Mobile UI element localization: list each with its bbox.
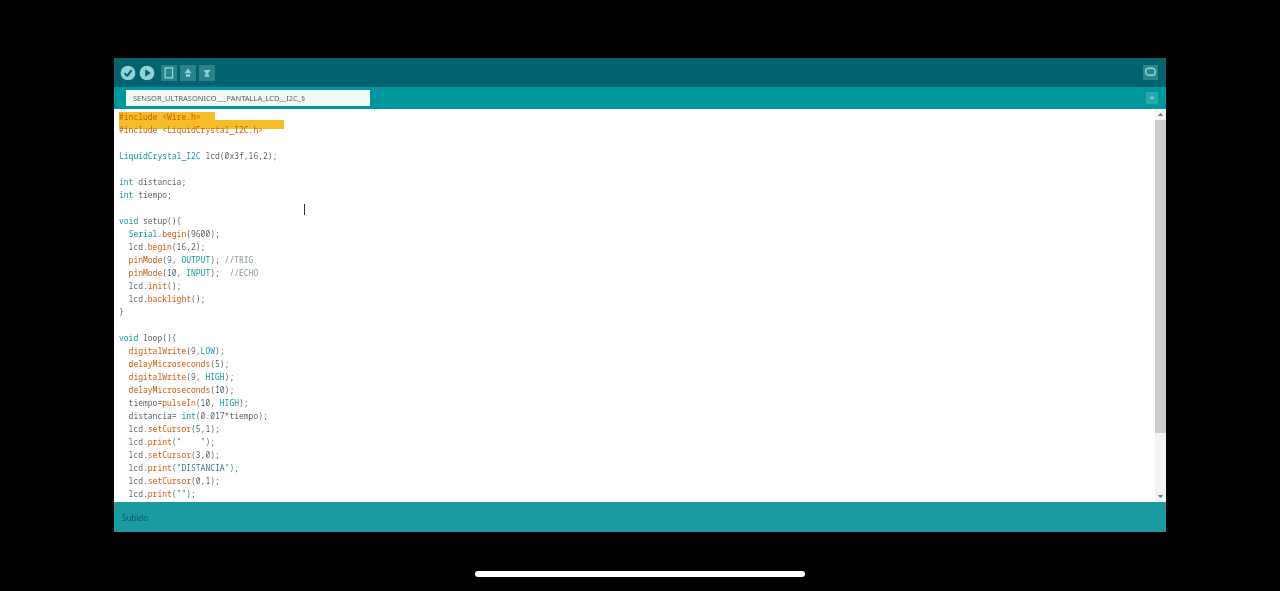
staticText: Serial.begin(9600); bbox=[119, 228, 220, 239]
staticText: lcd.print(""); bbox=[119, 488, 196, 499]
staticText: lcd.init(); bbox=[119, 280, 182, 291]
staticText: #include <Wire.h> bbox=[119, 111, 201, 122]
staticText: lcd.begin(16,2); bbox=[119, 241, 206, 252]
staticText: digitalWrite(9,LOW); bbox=[119, 345, 225, 356]
staticText: delayMicroseconds(10); bbox=[119, 384, 235, 395]
staticText: lcd.print(" "); bbox=[119, 436, 215, 447]
staticText: pinMode(10, INPUT); //ECHO bbox=[119, 267, 259, 278]
staticText: lcd.print("DISTANCIA"); bbox=[119, 462, 239, 473]
staticText: int distancia; bbox=[119, 176, 187, 187]
staticText: lcd.backlight(); bbox=[119, 293, 206, 304]
button[interactable]: New bbox=[161, 65, 177, 81]
staticText: lcd.setCursor(0,1); bbox=[119, 475, 220, 486]
staticText: digitalWrite(9, HIGH); bbox=[119, 371, 235, 382]
staticText: void loop(){ bbox=[119, 332, 177, 343]
button[interactable]: Upload bbox=[139, 65, 155, 81]
staticText: void setup(){ bbox=[119, 215, 182, 226]
staticText: SENSOR_ULTRASONICO___PANTALLA_LCD__I2C_§ bbox=[133, 93, 305, 103]
staticText: } bbox=[119, 306, 124, 317]
staticText: tiempo=pulseIn(10, HIGH); bbox=[119, 397, 249, 408]
button[interactable]: Save bbox=[199, 65, 215, 81]
staticText: Subido bbox=[122, 512, 149, 523]
staticText: pinMode(9, OUTPUT); //TRIG bbox=[119, 254, 254, 265]
button[interactable]: Verify bbox=[120, 65, 136, 81]
button[interactable]: Serial Monitor bbox=[1143, 65, 1158, 80]
staticText: distancia= int(0.017*tiempo); bbox=[119, 410, 268, 421]
button[interactable]: Tab menu bbox=[1146, 92, 1158, 104]
staticText: lcd.setCursor(5,1); bbox=[119, 423, 220, 434]
staticText: int tiempo; bbox=[119, 189, 172, 200]
staticText: lcd.setCursor(3,0); bbox=[119, 449, 220, 460]
staticText: #include <LiquidCrystal_I2C.h> bbox=[119, 124, 263, 135]
button[interactable]: SENSOR_ULTRASONICO___PANTALLA_LCD__I2C_§ bbox=[126, 90, 370, 106]
button[interactable]: Open bbox=[180, 65, 196, 81]
staticText: delayMicroseconds(5); bbox=[119, 358, 230, 369]
staticText: LiquidCrystal_I2C lcd(0x3f,16,2); bbox=[119, 150, 278, 161]
